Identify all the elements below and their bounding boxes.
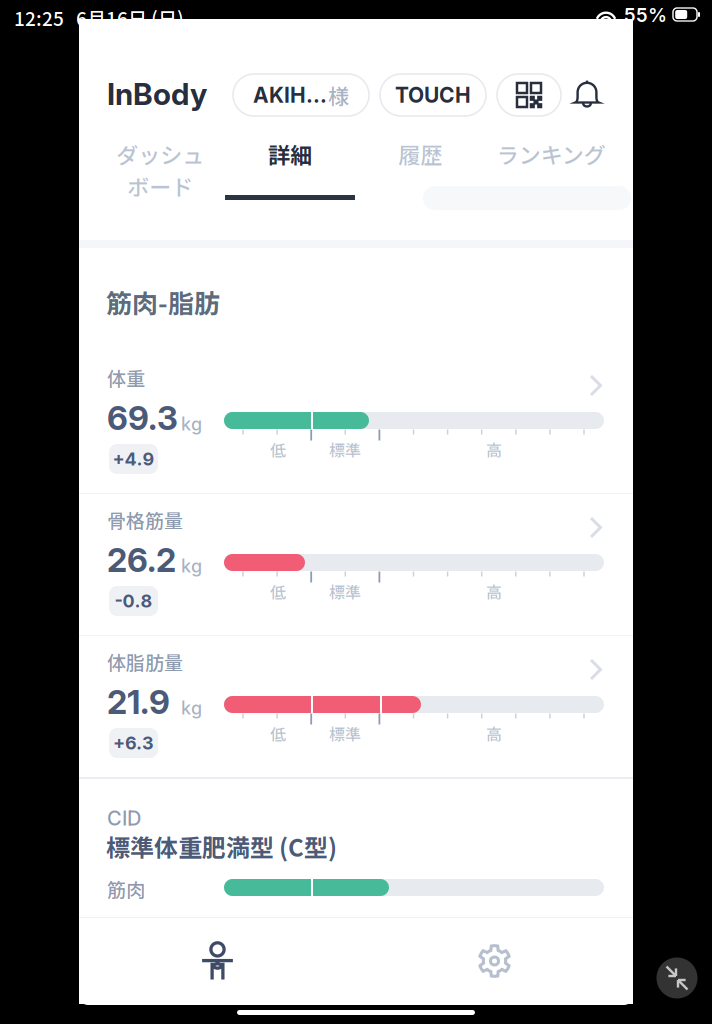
button[interactable]: 履歴 xyxy=(355,130,485,200)
button[interactable]: ランキング xyxy=(485,130,617,200)
staticText: 69.3 xyxy=(107,398,178,438)
staticText: CID xyxy=(107,806,141,830)
staticText: 標準 xyxy=(329,722,361,745)
staticText: 筋肉-脂肪 xyxy=(106,283,220,321)
staticText: 標準体重肥満型 (C型) xyxy=(106,829,337,864)
staticText: 体脂肪量 xyxy=(107,648,183,675)
staticText: 骨格筋量 xyxy=(107,506,183,533)
staticText: 21.9 xyxy=(107,682,170,722)
button[interactable]: 体脂肪量 xyxy=(79,636,633,777)
staticText: -0.8 xyxy=(114,590,152,612)
staticText: 筋肉 xyxy=(107,875,145,902)
staticText: AKIH... xyxy=(253,82,327,108)
staticText: TOUCH xyxy=(395,82,471,108)
staticText: +4.9 xyxy=(112,448,154,470)
staticText: 低 xyxy=(270,580,286,603)
staticText: InBody xyxy=(107,76,207,112)
button[interactable]: Shrink window xyxy=(649,950,705,1006)
staticText: 低 xyxy=(270,722,286,745)
staticText: ランキング xyxy=(496,138,605,170)
button[interactable]: Body composition xyxy=(79,918,356,1004)
staticText: 高 xyxy=(486,580,502,603)
staticText: 体重 xyxy=(107,364,145,391)
button[interactable]: InBody xyxy=(107,77,219,111)
button[interactable]: 体重 xyxy=(79,352,633,493)
button[interactable]: Notifications xyxy=(567,74,607,116)
staticText: 高 xyxy=(486,722,502,745)
staticText: 低 xyxy=(270,438,286,461)
staticText: kg xyxy=(181,697,202,719)
button[interactable]: 詳細 xyxy=(225,130,355,200)
staticText: kg xyxy=(181,555,202,577)
staticText: 様 xyxy=(328,80,349,110)
staticText: 12:25 6月16日 (日) xyxy=(14,4,184,31)
button[interactable]: AKIH... xyxy=(233,74,369,116)
staticText: +6.3 xyxy=(113,732,154,754)
button[interactable]: TOUCH xyxy=(380,74,486,116)
button[interactable]: ダッシュボード xyxy=(95,130,225,200)
staticText: 26.2 xyxy=(107,540,176,580)
button[interactable]: 骨格筋量 xyxy=(79,494,633,635)
staticText: kg xyxy=(181,413,202,435)
staticText: 標準 xyxy=(329,438,361,461)
staticText: 履歴 xyxy=(398,138,442,170)
staticText: 高 xyxy=(486,438,502,461)
staticText: 詳細 xyxy=(268,138,312,170)
button[interactable]: Settings xyxy=(356,918,633,1004)
button[interactable]: QR code xyxy=(497,74,561,116)
staticText: 標準 xyxy=(329,580,361,603)
staticText: ダッシュボード xyxy=(116,138,204,202)
staticText: 55% xyxy=(624,3,667,26)
